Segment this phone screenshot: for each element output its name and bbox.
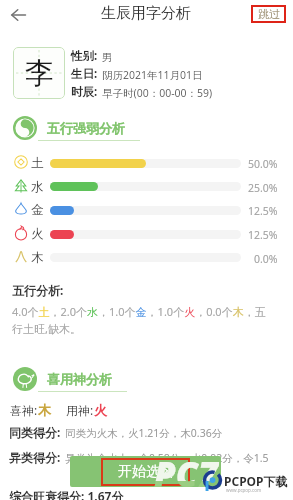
button[interactable]: Back [7, 3, 30, 26]
staticText: 性别: [71, 48, 98, 64]
staticText: 五行分析: [12, 282, 64, 298]
staticText: www.pcpop.com [226, 487, 262, 493]
staticText: 男 [102, 51, 113, 64]
staticText: PCPOP下载 [224, 473, 288, 489]
staticText: 喜神: [10, 402, 38, 418]
staticText: 时辰: [71, 84, 98, 100]
staticText: 五行强弱分析 [47, 120, 125, 136]
staticText: 同类得分: [9, 424, 61, 440]
staticText: 12.5% [248, 204, 278, 218]
staticText: 用神: [66, 402, 94, 418]
button[interactable]: 开始选名 [70, 456, 221, 487]
staticText: 木 [38, 402, 51, 418]
staticText: 土 [31, 155, 44, 171]
staticText: 12.5% [248, 228, 278, 242]
staticText: 25.0% [248, 181, 278, 195]
staticText: PC7 [154, 450, 219, 498]
staticText: 金 [31, 202, 44, 218]
staticText: 0.0% [254, 252, 278, 266]
staticText: 火 [94, 402, 107, 418]
staticText: 50.0% [248, 157, 278, 171]
staticText: 同类为火木，火1.21分，木0.36分 [65, 426, 223, 440]
staticText: 阴历2021年11月01日 [102, 68, 203, 82]
staticText: 跳过 [258, 7, 280, 21]
staticText: 生辰用字分析 [101, 4, 191, 23]
staticText: 水 [31, 179, 44, 195]
staticText: 综合旺衰得分: 1.67分 [9, 488, 124, 500]
staticText: 异类得分: [9, 449, 61, 465]
staticText: 李 [25, 55, 54, 92]
staticText: 喜用神分析 [47, 371, 112, 387]
staticText: 早子时(00：00-00：59) [102, 86, 213, 100]
staticText: 生日: [71, 66, 98, 82]
staticText: 异类为金水土，金0.58分，水0.92分，令1.5 [65, 451, 269, 465]
staticText: 4.0个土，2.0个水，1.0个金，1.0个火，0.0个木，五行土旺,缺木。 [12, 304, 270, 336]
staticText: 开始选名 [118, 463, 174, 481]
staticText: 火 [31, 226, 44, 242]
staticText: PC7 [154, 456, 219, 481]
staticText: 木 [31, 250, 44, 266]
button[interactable]: 跳过 [251, 5, 286, 23]
